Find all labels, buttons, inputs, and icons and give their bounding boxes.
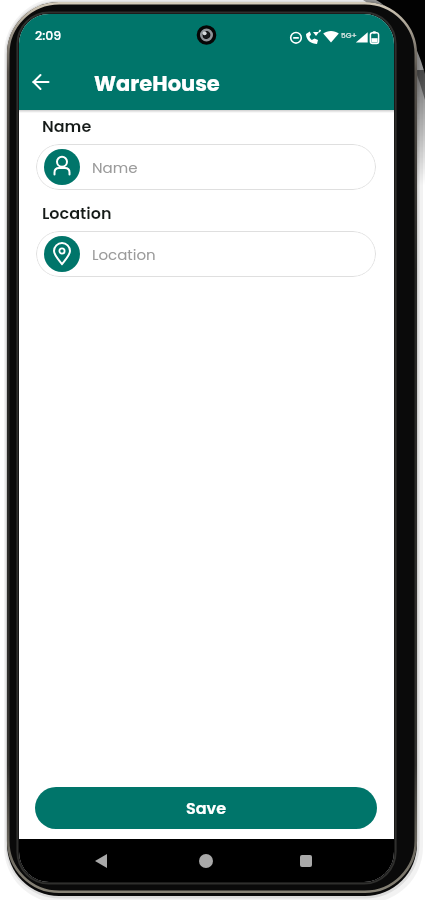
staticText: Name	[92, 157, 138, 178]
button[interactable]	[25, 66, 57, 98]
staticText: Name	[42, 115, 92, 137]
staticText: 5G+	[341, 30, 357, 40]
button[interactable]	[286, 841, 326, 881]
staticText: Location	[42, 202, 112, 224]
button[interactable]: Name	[36, 144, 376, 190]
staticText: WareHouse	[94, 69, 220, 98]
staticText: Save	[186, 797, 227, 819]
button[interactable]	[186, 841, 226, 881]
button[interactable]	[81, 841, 121, 881]
staticText: Location	[92, 244, 156, 265]
staticText: 2:09	[35, 27, 62, 44]
button[interactable]: Location	[36, 231, 376, 277]
button[interactable]: Save	[35, 787, 377, 829]
